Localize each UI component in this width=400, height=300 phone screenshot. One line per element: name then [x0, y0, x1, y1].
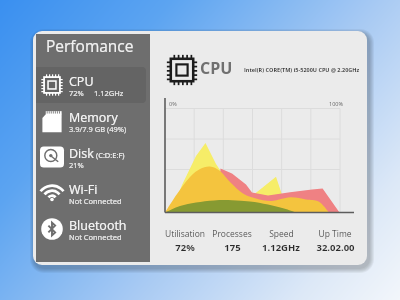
staticText: 3.9/7.9 GB (49%)	[69, 124, 127, 134]
button[interactable]: Up Time	[303, 228, 367, 253]
button[interactable]: Speed	[249, 228, 313, 253]
button[interactable]: Utilisation	[153, 228, 217, 253]
staticText: Up Time	[318, 228, 352, 240]
staticText: CPU	[200, 57, 233, 79]
other: Memory	[40, 109, 64, 133]
staticText: CPU	[69, 73, 94, 90]
staticText: 175	[224, 241, 241, 254]
other: CPU	[40, 73, 64, 97]
staticText: (C:D:E:F)	[94, 150, 125, 160]
other: Disk	[40, 145, 64, 169]
staticText: Processes	[212, 228, 252, 240]
staticText: Not Connected	[69, 232, 122, 242]
button[interactable]: Memory	[36, 103, 146, 139]
staticText: Bluetooth	[69, 217, 127, 234]
button[interactable]: Processes	[200, 228, 264, 253]
staticText: 72%	[175, 241, 195, 254]
button[interactable]: Bluetooth	[36, 211, 146, 247]
staticText: 21%	[69, 160, 84, 170]
staticText: Wi-Fi	[69, 181, 98, 198]
button[interactable]: Disk	[36, 139, 146, 175]
staticText: Utilisation	[165, 228, 205, 240]
staticText: Speed	[269, 228, 294, 240]
staticText: 1.12GHz	[94, 88, 124, 98]
staticText: Perfomance	[46, 35, 134, 56]
other: Wi-Fi	[40, 181, 64, 205]
other: Bluetooth	[40, 217, 64, 241]
button[interactable]: Wi-Fi	[36, 175, 146, 211]
staticText: 1.12GHz	[262, 241, 300, 254]
staticText: Memory	[69, 109, 118, 126]
staticText: 0%	[169, 100, 177, 107]
staticText: 100%	[329, 100, 343, 107]
staticText: Not Connected	[69, 196, 122, 206]
button[interactable]: CPU	[36, 67, 146, 103]
other: CPU	[165, 53, 199, 87]
staticText: Disk	[69, 145, 94, 162]
staticText: Intel(R) CORE(TM) i5-5200U CPU @ 2.20GHz	[244, 66, 360, 73]
staticText: 32.02.00	[316, 241, 355, 254]
staticText: 72%	[69, 88, 84, 98]
